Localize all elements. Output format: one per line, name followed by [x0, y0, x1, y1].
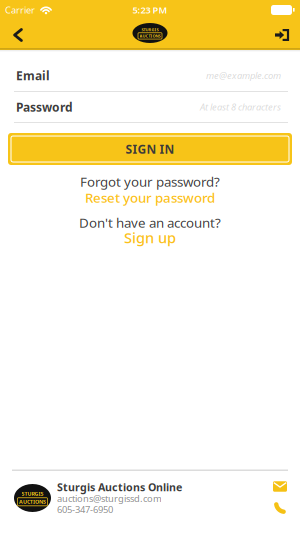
staticText: Carrier [5, 4, 35, 16]
staticText: SIGN IN [125, 141, 174, 157]
button[interactable]: Back [0, 20, 23, 49]
button[interactable]: Sign up [124, 229, 176, 244]
staticText: Forgot your password? [80, 173, 220, 190]
staticText: STURGIS [21, 490, 43, 497]
staticText: STURGIS [141, 27, 158, 32]
staticText: me@example.com [206, 69, 281, 82]
staticText: 5:23 PM [132, 4, 167, 16]
staticText: Don't have an account? [79, 214, 221, 231]
staticText: AUCTIONS [139, 33, 160, 38]
button[interactable]: Reset your password [85, 188, 215, 204]
button[interactable]: Call [273, 501, 287, 515]
staticText: Email [16, 67, 50, 83]
button[interactable]: SIGN IN [0, 133, 300, 165]
staticText: AUCTIONS [19, 498, 46, 505]
staticText: Reset your password [85, 189, 215, 206]
staticText: At least 8 characters [200, 101, 281, 113]
staticText: Sign up [124, 228, 176, 247]
button[interactable]: Email [273, 481, 287, 492]
staticText: auctions@sturgissd.com [57, 492, 162, 505]
staticText: Sturgis Auctions Online [57, 480, 182, 494]
button[interactable]: Sign in [275, 20, 300, 50]
staticText: Password [16, 99, 73, 115]
staticText: 605-347-6950 [57, 503, 113, 516]
